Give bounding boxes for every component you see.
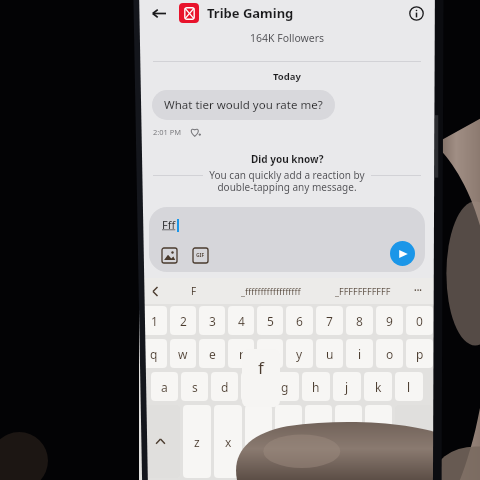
- staticText: m: [373, 434, 385, 450]
- button[interactable]: Tribe Gaming: [207, 4, 405, 22]
- staticText: z: [194, 434, 200, 450]
- staticText: You can quickly add a reaction by double…: [209, 168, 365, 194]
- staticText: v: [285, 434, 292, 450]
- button[interactable]: 5: [257, 306, 283, 335]
- staticText: F: [191, 284, 197, 298]
- button[interactable]: n: [335, 405, 362, 478]
- button[interactable]: Send: [390, 241, 415, 266]
- staticText: u: [326, 346, 334, 362]
- staticText: 7: [326, 313, 333, 329]
- staticText: GIF: [196, 252, 205, 259]
- button[interactable]: More: [409, 282, 427, 300]
- staticText: 6: [296, 313, 303, 329]
- button[interactable]: GIF: [193, 248, 208, 263]
- button[interactable]: h: [302, 372, 330, 401]
- button[interactable]: x: [214, 405, 242, 478]
- staticText: 164K Followers: [250, 31, 325, 45]
- button[interactable]: z: [183, 405, 211, 478]
- button[interactable]: 3: [199, 306, 225, 335]
- staticText: j: [345, 379, 349, 395]
- button[interactable]: What tier would you rate me?: [152, 90, 335, 120]
- staticText: Did you know?: [251, 152, 324, 166]
- staticText: 1: [151, 313, 158, 329]
- button[interactable]: p: [406, 339, 433, 368]
- button[interactable]: 7: [316, 306, 343, 335]
- staticText: p: [416, 346, 424, 362]
- staticText: •••: [414, 286, 422, 296]
- button[interactable]: l: [395, 372, 423, 401]
- button[interactable]: d: [211, 372, 238, 401]
- staticText: _ffffffffffffffffff: [241, 285, 301, 297]
- button[interactable]: y: [286, 339, 313, 368]
- button[interactable]: f: [241, 372, 268, 401]
- button[interactable]: b: [305, 405, 332, 478]
- button[interactable]: o: [376, 339, 403, 368]
- staticText: x: [225, 434, 232, 450]
- button[interactable]: Info: [405, 2, 427, 24]
- staticText: w: [178, 346, 188, 362]
- staticText: What tier would you rate me?: [164, 97, 323, 113]
- staticText: n: [345, 434, 353, 450]
- button[interactable]: m: [365, 405, 392, 478]
- staticText: s: [192, 379, 198, 395]
- button[interactable]: Previous: [147, 283, 163, 299]
- staticText: y: [296, 346, 303, 362]
- staticText: 3: [209, 313, 216, 329]
- staticText: o: [386, 346, 394, 362]
- button[interactable]: i: [346, 339, 373, 368]
- button[interactable]: r: [228, 339, 254, 368]
- button[interactable]: c: [245, 405, 272, 478]
- button[interactable]: k: [364, 372, 392, 401]
- staticText: Tribe Gaming: [207, 4, 294, 22]
- button[interactable]: Shift: [395, 405, 433, 478]
- button[interactable]: g: [271, 372, 299, 401]
- button[interactable]: t: [257, 339, 283, 368]
- staticText: e: [209, 346, 216, 362]
- button[interactable]: u: [316, 339, 343, 368]
- staticText: l: [407, 379, 411, 395]
- staticText: 2:01 PM: [153, 127, 182, 137]
- staticText: d: [221, 379, 229, 395]
- button[interactable]: _ffffffffffffffffff: [225, 285, 317, 297]
- staticText: 4: [238, 313, 245, 329]
- button[interactable]: F: [163, 284, 225, 298]
- button[interactable]: Gallery: [162, 248, 177, 263]
- button[interactable]: 6: [286, 306, 313, 335]
- staticText: _FFFFFFFFFFF: [335, 285, 391, 297]
- button[interactable]: 0: [406, 306, 433, 335]
- staticText: Fff: [162, 217, 176, 232]
- button[interactable]: Back: [147, 2, 169, 24]
- staticText: h: [312, 379, 320, 395]
- button[interactable]: 4: [228, 306, 254, 335]
- staticText: 9: [386, 313, 393, 329]
- button[interactable]: e: [199, 339, 225, 368]
- button[interactable]: q: [141, 339, 167, 368]
- staticText: Today: [273, 70, 301, 83]
- staticText: q: [150, 346, 158, 362]
- staticText: k: [375, 379, 382, 395]
- button[interactable]: 1: [141, 306, 167, 335]
- button[interactable]: 8: [346, 306, 373, 335]
- button[interactable]: _FFFFFFFFFFF: [317, 285, 409, 297]
- button[interactable]: v: [275, 405, 302, 478]
- button[interactable]: Shift: [141, 405, 180, 478]
- button[interactable]: j: [333, 372, 361, 401]
- staticText: b: [315, 434, 323, 450]
- button[interactable]: s: [181, 372, 208, 401]
- staticText: f: [258, 356, 264, 379]
- staticText: 5: [267, 313, 274, 329]
- staticText: g: [281, 379, 289, 395]
- staticText: 2: [180, 313, 187, 329]
- staticText: a: [161, 379, 168, 395]
- staticText: r: [239, 346, 244, 362]
- button[interactable]: w: [170, 339, 196, 368]
- staticText: 0: [416, 313, 423, 329]
- button[interactable]: 9: [376, 306, 403, 335]
- button[interactable]: 2: [170, 306, 196, 335]
- button[interactable]: Add reaction: [189, 126, 201, 138]
- staticText: 8: [356, 313, 363, 329]
- button[interactable]: a: [151, 372, 178, 401]
- staticText: i: [358, 346, 362, 362]
